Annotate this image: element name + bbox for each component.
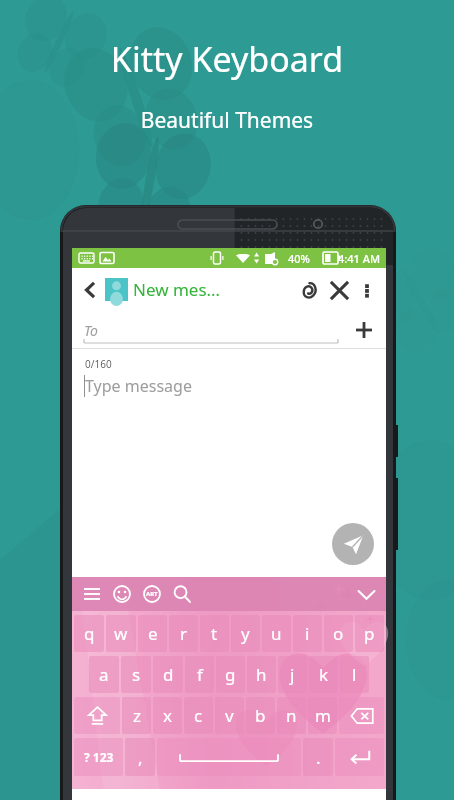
staticText: r: [180, 622, 188, 645]
staticText: t: [211, 622, 218, 645]
staticText: i: [305, 622, 310, 645]
button[interactable]: j: [278, 656, 307, 693]
staticText: l: [352, 663, 357, 686]
staticText: .: [316, 746, 321, 769]
staticText: Kitty Keyboard: [0, 36, 454, 82]
staticText: z: [133, 704, 141, 727]
staticText: q: [84, 622, 95, 645]
staticText: n: [286, 704, 297, 727]
staticText: h: [256, 663, 267, 686]
button[interactable]: Add recipient: [348, 314, 380, 346]
button[interactable]: z: [122, 697, 151, 734]
button[interactable]: i: [293, 615, 322, 652]
button[interactable]: m: [308, 697, 337, 734]
staticText: 40%: [288, 251, 310, 266]
staticText: g: [225, 663, 236, 686]
button[interactable]: k: [309, 656, 338, 693]
button[interactable]: e: [138, 615, 167, 652]
button[interactable]: Attach: [294, 275, 324, 305]
button[interactable]: Hide keyboard: [350, 578, 382, 610]
button[interactable]: Emoji: [108, 580, 136, 608]
button[interactable]: s: [121, 656, 151, 693]
staticText: k: [319, 663, 329, 686]
staticText: 4:41 AM: [338, 251, 381, 266]
staticText: p: [364, 622, 375, 645]
button[interactable]: r: [169, 615, 198, 652]
staticText: e: [148, 622, 158, 645]
button[interactable]: p: [355, 615, 384, 652]
staticText: s: [132, 663, 141, 686]
staticText: w: [114, 622, 128, 645]
staticText: f: [197, 663, 203, 686]
button[interactable]: f: [185, 656, 214, 693]
staticText: b: [255, 704, 266, 727]
button[interactable]: ? 123: [74, 738, 123, 776]
button[interactable]: d: [153, 656, 183, 693]
button[interactable]: More options: [354, 277, 380, 303]
button[interactable]: Contact avatar: [105, 278, 128, 301]
button[interactable]: w: [106, 615, 136, 652]
button[interactable]: l: [340, 656, 369, 693]
button[interactable]: y: [231, 615, 260, 652]
staticText: x: [163, 704, 172, 727]
staticText: Type message: [85, 375, 192, 397]
button[interactable]: .: [303, 738, 333, 776]
button[interactable]: t: [200, 615, 229, 652]
button[interactable]: Close: [324, 275, 354, 305]
button[interactable]: g: [216, 656, 245, 693]
button[interactable]: u: [262, 615, 291, 652]
button[interactable]: Art: [138, 580, 166, 608]
button[interactable]: Search: [168, 580, 196, 608]
staticText: 0/160: [85, 357, 112, 371]
button[interactable]: c: [184, 697, 213, 734]
staticText: ART: [146, 590, 158, 598]
staticText: c: [194, 704, 203, 727]
button[interactable]: v: [215, 697, 244, 734]
button[interactable]: Send message: [332, 523, 374, 565]
button[interactable]: h: [247, 656, 276, 693]
staticText: ? 123: [84, 749, 114, 765]
button[interactable]: ,: [125, 738, 155, 776]
button[interactable]: Menu: [78, 580, 106, 608]
staticText: a: [99, 663, 109, 686]
button[interactable]: o: [324, 615, 353, 652]
button[interactable]: [339, 697, 384, 734]
staticText: u: [271, 622, 282, 645]
staticText: To: [84, 321, 98, 340]
button[interactable]: [335, 738, 384, 776]
staticText: New mes…: [133, 278, 221, 301]
button[interactable]: Back: [78, 278, 102, 302]
staticText: j: [290, 663, 295, 686]
staticText: Beautiful Themes: [0, 106, 454, 135]
staticText: ,: [138, 746, 143, 769]
staticText: d: [163, 663, 174, 686]
staticText: v: [225, 704, 234, 727]
staticText: o: [333, 622, 344, 645]
button[interactable]: x: [153, 697, 182, 734]
button[interactable]: q: [74, 615, 104, 652]
button[interactable]: b: [246, 697, 275, 734]
button[interactable]: To: [84, 315, 338, 345]
staticText: m: [315, 704, 331, 727]
button[interactable]: [157, 738, 301, 776]
button[interactable]: a: [89, 656, 119, 693]
button[interactable]: n: [277, 697, 306, 734]
button[interactable]: [74, 697, 120, 734]
staticText: y: [241, 622, 250, 645]
